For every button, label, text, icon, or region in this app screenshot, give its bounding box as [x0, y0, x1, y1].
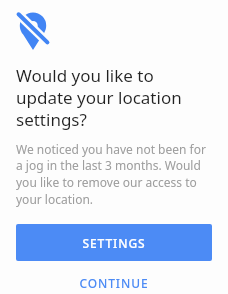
staticText: Would you like to update your location s…: [16, 64, 212, 131]
button[interactable]: SETTINGS: [16, 224, 212, 261]
button[interactable]: CONTINUE: [16, 271, 212, 294]
staticText: CONTINUE: [79, 275, 149, 291]
staticText: We noticed you have not been for a jog i…: [16, 141, 212, 208]
other: Location off: [18, 12, 48, 50]
staticText: SETTINGS: [82, 235, 146, 251]
